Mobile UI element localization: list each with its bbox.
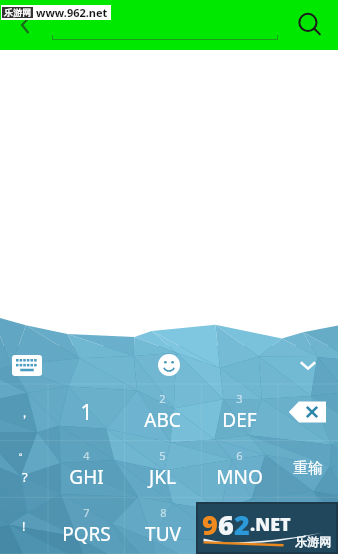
staticText: 9 <box>236 505 243 520</box>
button[interactable]: ， <box>0 384 48 440</box>
button[interactable]: 1 <box>48 384 124 440</box>
staticText: .NET <box>250 512 291 537</box>
button[interactable]: Search <box>290 5 330 45</box>
staticText: www.962.net <box>36 5 108 20</box>
button[interactable]: Hide keyboard <box>290 347 326 383</box>
button[interactable]: ! <box>0 497 48 554</box>
staticText: 乐游网 <box>295 534 331 549</box>
button[interactable] <box>278 497 338 554</box>
button[interactable]: 3 <box>201 384 278 440</box>
staticText: 。 <box>18 442 31 458</box>
staticText: MNO <box>216 464 263 490</box>
staticText: ! <box>22 517 26 535</box>
button[interactable]: 7 <box>48 497 124 554</box>
staticText: 6 <box>236 448 243 463</box>
button[interactable]: Emoji <box>151 347 187 383</box>
staticText: TUV <box>145 521 181 547</box>
staticText: 2 <box>159 391 166 406</box>
staticText: 2 <box>234 506 250 543</box>
staticText: 重输 <box>293 459 323 478</box>
staticText: GHI <box>69 464 104 490</box>
button[interactable] <box>52 10 278 40</box>
button[interactable]: 。 <box>0 440 48 497</box>
staticText: 乐游网 <box>4 7 31 18</box>
button[interactable]: 9 <box>201 497 278 554</box>
staticText: WXYZ <box>214 521 265 547</box>
staticText: 9 <box>202 506 218 543</box>
staticText: 6 <box>218 506 234 543</box>
staticText: DEF <box>222 407 257 433</box>
staticText: 7 <box>83 505 90 520</box>
other: Backspace <box>288 399 328 425</box>
staticText: 5 <box>159 448 166 463</box>
staticText: ? <box>22 468 28 486</box>
staticText: PQRS <box>62 521 111 547</box>
button[interactable]: 重输 <box>278 440 338 497</box>
staticText: ， <box>18 404 31 420</box>
button[interactable]: 8 <box>124 497 201 554</box>
staticText: 3 <box>236 391 243 406</box>
staticText: 1 <box>80 398 93 427</box>
button[interactable]: Backspace <box>278 384 338 440</box>
button[interactable]: 6 <box>201 440 278 497</box>
button[interactable]: Switch keyboard <box>10 352 44 378</box>
staticText: 8 <box>160 505 167 520</box>
button[interactable]: 4 <box>48 440 124 497</box>
button[interactable]: 2 <box>124 384 201 440</box>
button[interactable]: Back <box>8 7 44 43</box>
staticText: JKL <box>149 464 176 490</box>
button[interactable]: 5 <box>124 440 201 497</box>
staticText: ABC <box>144 407 181 433</box>
staticText: 4 <box>83 448 90 463</box>
